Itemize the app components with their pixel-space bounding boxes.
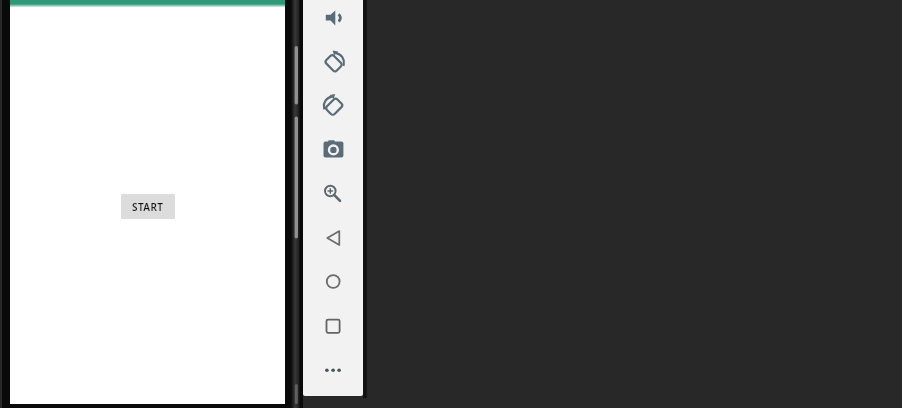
button[interactable] [313, 43, 353, 83]
button[interactable] [313, 172, 353, 212]
button[interactable] [313, 306, 353, 346]
staticText: START [132, 200, 164, 214]
button[interactable] [313, 262, 353, 302]
button[interactable] [313, 0, 353, 38]
button[interactable] [313, 130, 353, 170]
button[interactable]: START [121, 194, 175, 219]
button[interactable] [313, 218, 353, 258]
button[interactable] [313, 350, 353, 390]
button[interactable] [313, 86, 353, 126]
